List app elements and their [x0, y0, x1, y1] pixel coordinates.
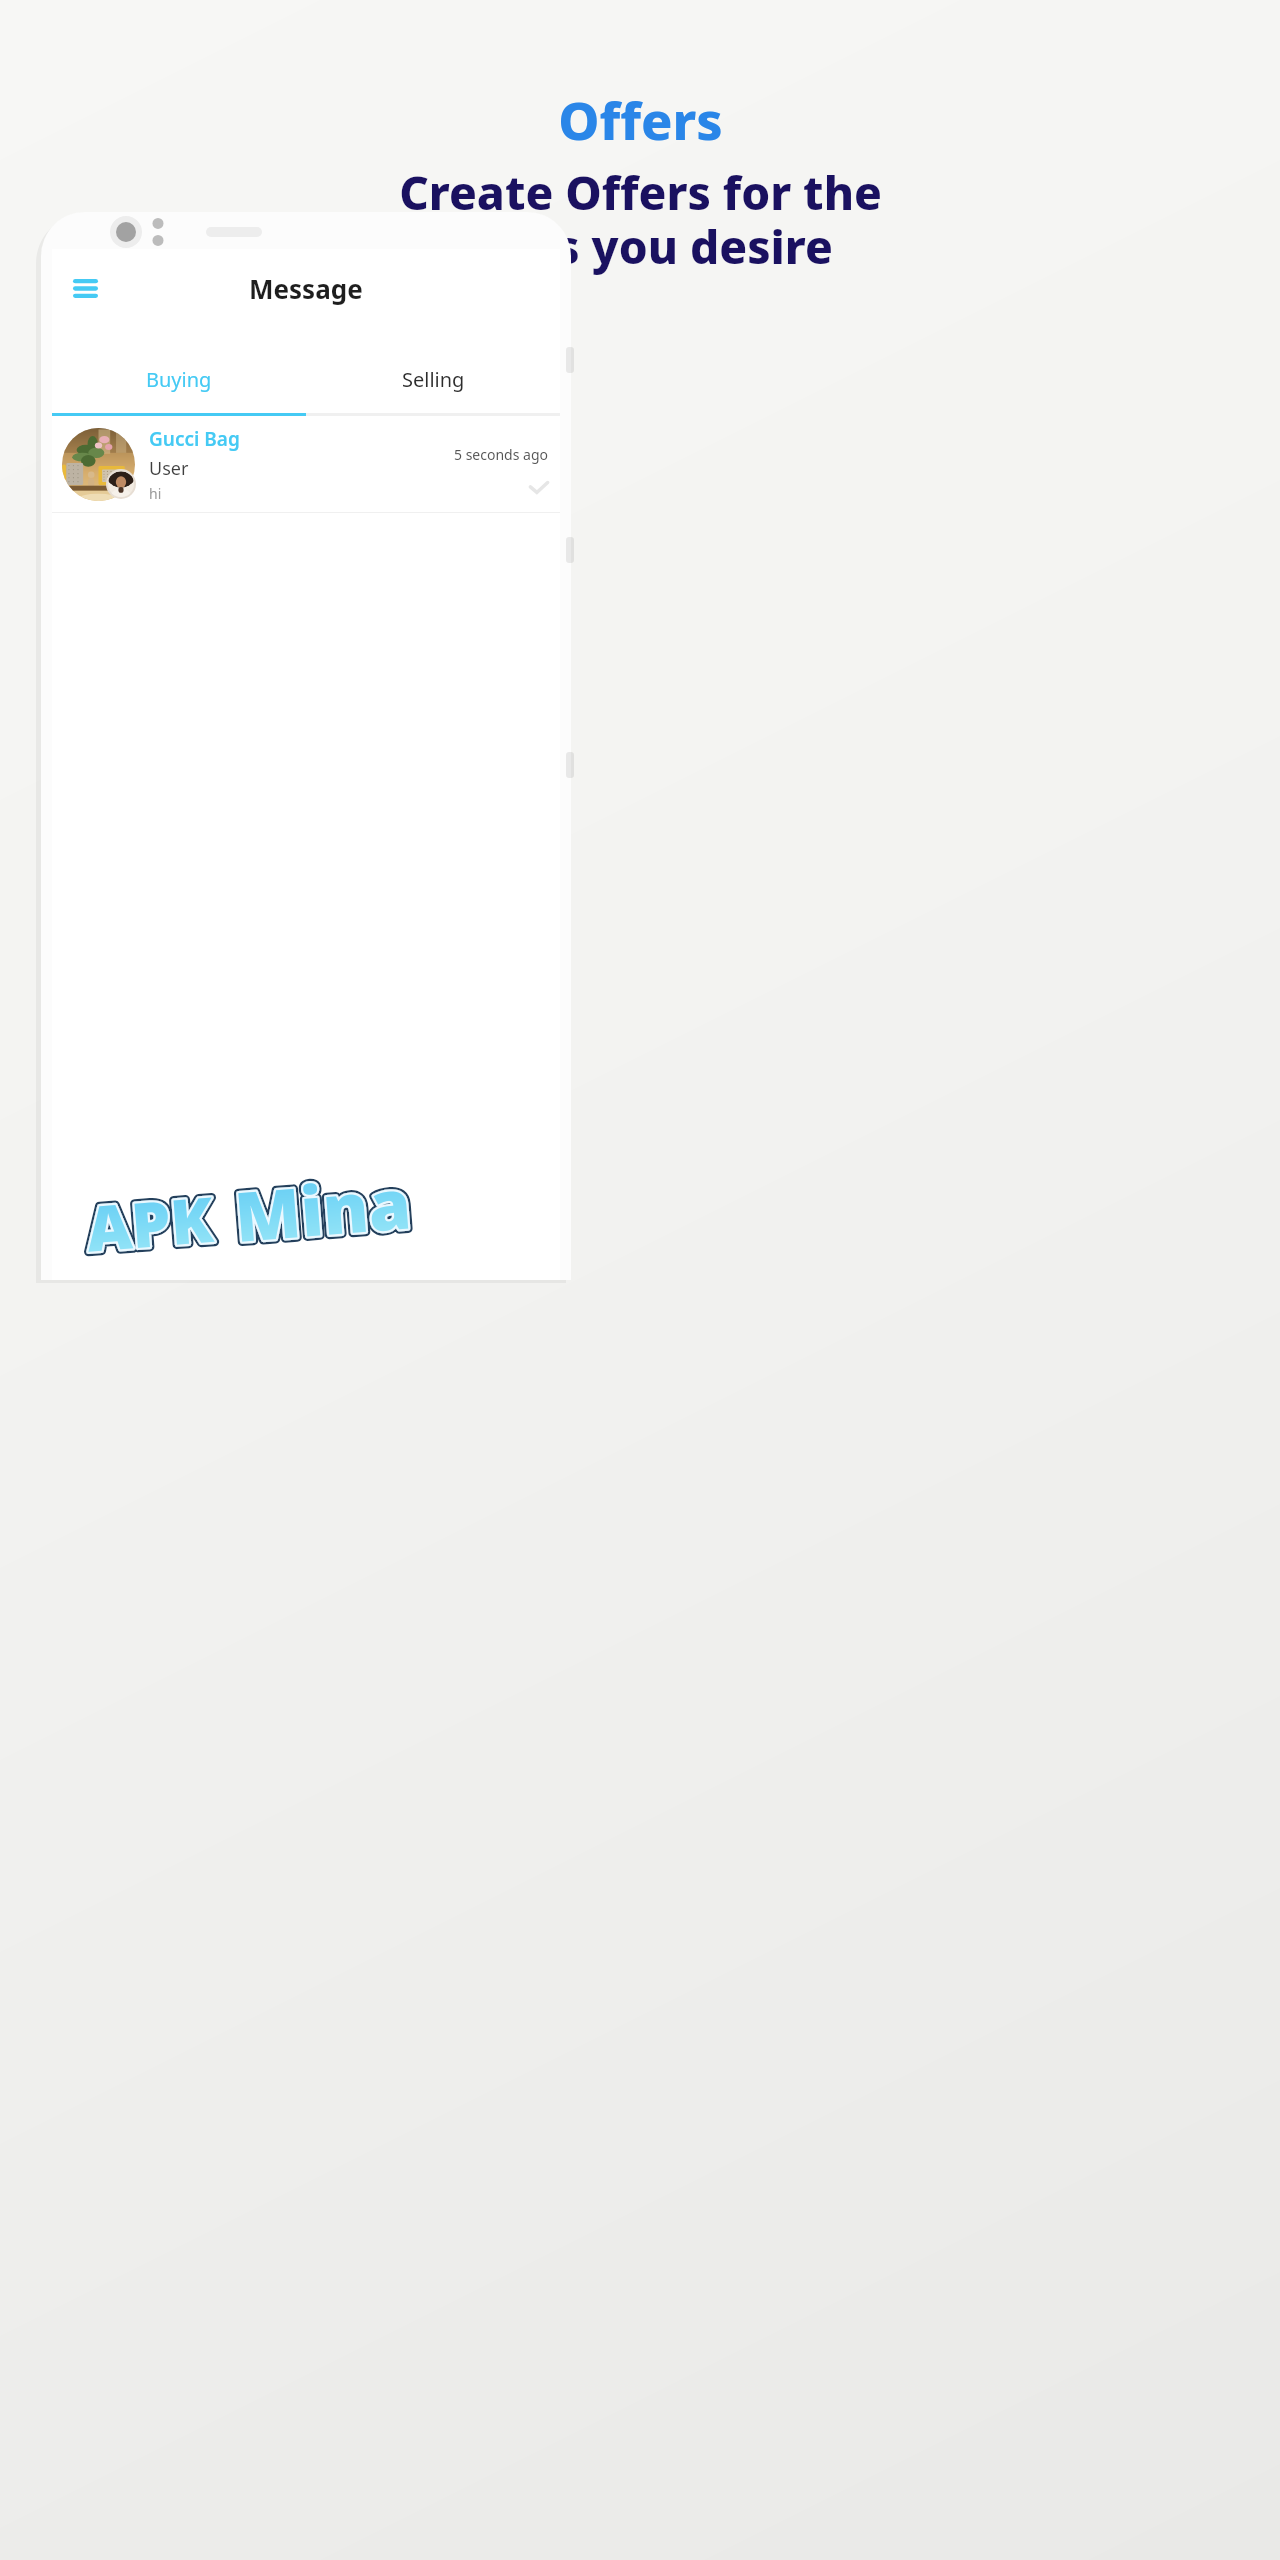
staticText: Offers	[558, 84, 723, 155]
staticText: User	[149, 456, 189, 481]
button[interactable]: Gucci Bag	[52, 416, 560, 512]
staticText: Message	[249, 271, 363, 306]
button[interactable]: Open navigation menu	[62, 265, 108, 311]
button[interactable]: Selling	[306, 359, 560, 399]
staticText: Create Offers for the items you desire	[399, 161, 882, 278]
staticText: Mina	[231, 1155, 414, 1262]
staticText: hi	[149, 484, 162, 503]
staticText: Mina	[231, 1155, 414, 1262]
staticText: 5 seconds ago	[454, 445, 548, 464]
staticText: Buying	[146, 366, 212, 393]
staticText: APK	[83, 1176, 216, 1270]
staticText: Gucci Bag	[149, 426, 240, 452]
button[interactable]: Buying	[52, 359, 306, 399]
staticText: APK	[83, 1176, 216, 1270]
staticText: APK	[83, 1176, 216, 1270]
staticText: Selling	[402, 366, 465, 393]
staticText: Mina	[231, 1155, 414, 1262]
